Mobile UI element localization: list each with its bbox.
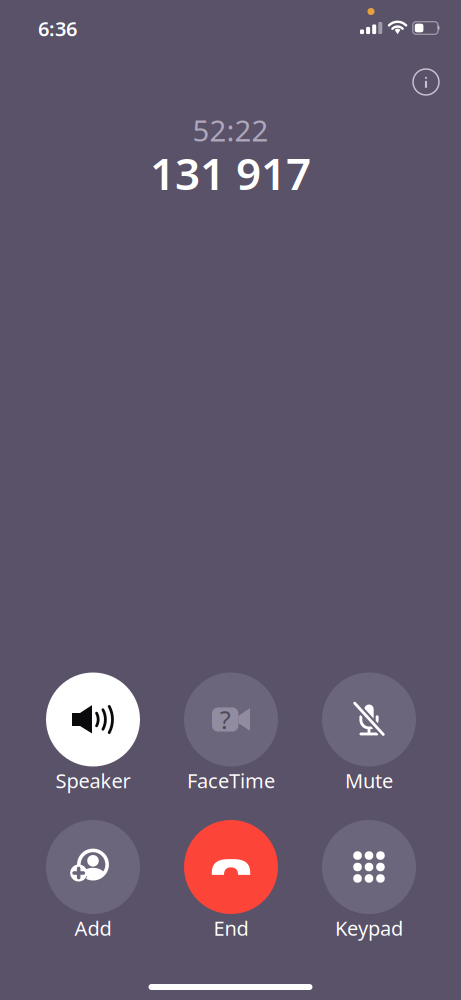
- staticText: End: [213, 915, 248, 941]
- staticText: ?: [220, 703, 231, 736]
- button[interactable]: Mute: [307, 672, 431, 790]
- button[interactable]: ?: [169, 672, 293, 790]
- staticText: Keypad: [335, 915, 403, 941]
- button[interactable]: Speaker: [31, 672, 155, 790]
- button[interactable]: Keypad: [307, 820, 431, 938]
- button[interactable]: Add: [31, 820, 155, 938]
- staticText: Speaker: [55, 767, 130, 794]
- button[interactable]: End: [169, 820, 293, 938]
- staticText: 6:36: [38, 15, 77, 42]
- staticText: Add: [74, 915, 111, 941]
- button[interactable]: Call details: [404, 60, 448, 104]
- staticText: FaceTime: [187, 767, 275, 794]
- staticText: 131 917: [150, 144, 311, 202]
- staticText: Mute: [345, 767, 393, 794]
- staticText: 52:22: [192, 110, 268, 149]
